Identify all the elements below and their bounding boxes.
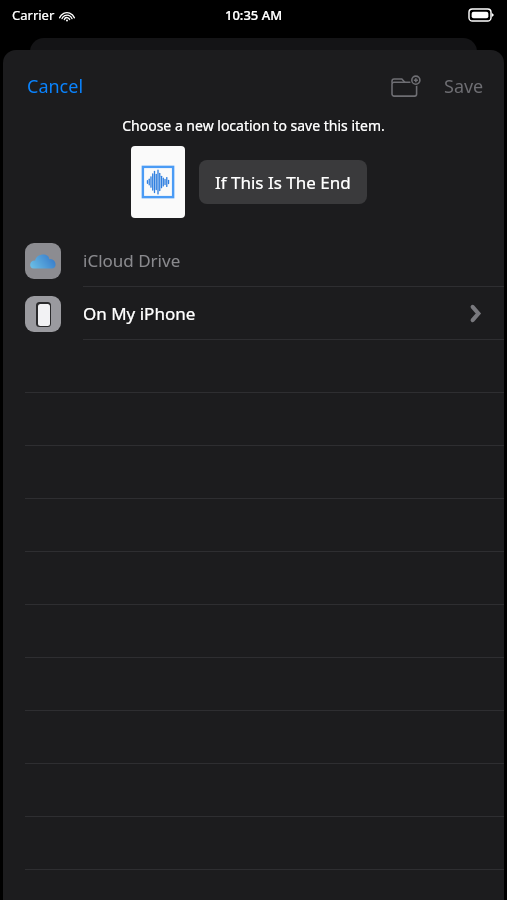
button[interactable]: Audio document [131,146,185,218]
staticText: iCloud Drive [83,249,181,272]
staticText: Carrier [12,6,55,24]
staticText: Save [444,74,484,99]
staticText: On My iPhone [83,302,196,325]
button[interactable]: Cancel [3,66,108,107]
button[interactable]: New Folder [384,67,430,107]
staticText: If This Is The End [215,171,351,194]
button[interactable]: If This Is The End [199,160,367,204]
button[interactable]: Save [430,66,504,107]
button[interactable]: On My iPhone [3,287,504,340]
button[interactable]: iCloud Drive [3,234,504,287]
staticText: Cancel [27,74,84,99]
staticText: 10:35 AM [225,6,283,24]
staticText: Choose a new location to save this item. [19,116,488,135]
